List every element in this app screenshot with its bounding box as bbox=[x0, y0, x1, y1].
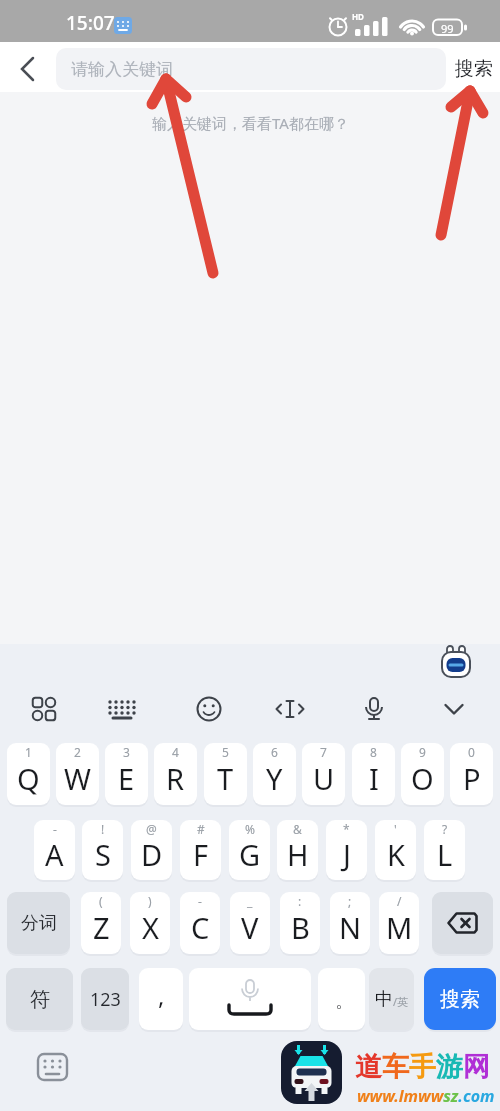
button[interactable]: # bbox=[180, 820, 221, 880]
button[interactable]: 0 bbox=[450, 743, 493, 805]
staticText: P bbox=[463, 759, 481, 798]
button[interactable]: / bbox=[379, 892, 419, 954]
button[interactable] bbox=[432, 892, 493, 954]
staticText: ; bbox=[348, 893, 352, 909]
button[interactable]: @ bbox=[131, 820, 172, 880]
staticText: # bbox=[197, 821, 205, 837]
staticText: * bbox=[343, 821, 350, 837]
staticText: www.lmwwsz.com bbox=[357, 1085, 495, 1107]
button[interactable]: 搜索 bbox=[448, 48, 500, 90]
button[interactable]: ( bbox=[81, 892, 121, 954]
staticText: 9 bbox=[419, 744, 426, 760]
staticText: 搜索 bbox=[455, 57, 493, 81]
staticText: 车 bbox=[382, 1050, 409, 1084]
staticText: D bbox=[141, 835, 163, 874]
staticText: 7 bbox=[320, 744, 327, 760]
staticText: ' bbox=[394, 821, 397, 837]
button[interactable]: - bbox=[180, 892, 220, 954]
button[interactable]: 分词 bbox=[7, 892, 70, 954]
staticText: 道 bbox=[355, 1050, 382, 1084]
staticText: B bbox=[291, 908, 310, 947]
staticText: J bbox=[343, 835, 351, 874]
staticText: A bbox=[45, 835, 64, 874]
staticText: 请输入关键词 bbox=[71, 59, 173, 80]
button[interactable]: 5 bbox=[204, 743, 247, 805]
staticText: - bbox=[53, 821, 57, 837]
button[interactable]: 8 bbox=[352, 743, 395, 805]
button[interactable]: : bbox=[280, 892, 320, 954]
staticText: C bbox=[191, 908, 210, 947]
staticText: 2 bbox=[74, 744, 81, 760]
staticText: G bbox=[239, 835, 261, 874]
staticText: 99 bbox=[441, 21, 454, 36]
staticText: 6 bbox=[271, 744, 278, 760]
staticText: _ bbox=[247, 893, 253, 909]
button[interactable]: 6 bbox=[253, 743, 296, 805]
button[interactable]: , bbox=[139, 968, 183, 1030]
staticText: 123 bbox=[90, 987, 121, 1012]
staticText: R bbox=[166, 759, 185, 798]
staticText: /英 bbox=[393, 994, 409, 1009]
button[interactable]: 中 bbox=[369, 968, 414, 1030]
button[interactable]: ' bbox=[375, 820, 416, 880]
button[interactable] bbox=[441, 645, 471, 678]
staticText: : bbox=[298, 893, 302, 909]
button[interactable]: 2 bbox=[56, 743, 99, 805]
button[interactable]: 搜索 bbox=[424, 968, 496, 1030]
staticText: X bbox=[142, 908, 159, 947]
staticText: / bbox=[397, 893, 402, 909]
button[interactable] bbox=[36, 1050, 70, 1084]
button[interactable] bbox=[189, 689, 229, 729]
button[interactable] bbox=[354, 689, 394, 729]
button[interactable]: 9 bbox=[401, 743, 444, 805]
staticText: Z bbox=[93, 908, 110, 947]
staticText: H bbox=[287, 835, 309, 874]
staticText: 中 bbox=[375, 988, 393, 1011]
button[interactable]: 4 bbox=[154, 743, 197, 805]
staticText: E bbox=[118, 759, 135, 798]
staticText: 分词 bbox=[21, 912, 57, 935]
button[interactable]: - bbox=[34, 820, 75, 880]
staticText: 8 bbox=[370, 744, 377, 760]
staticText: I bbox=[369, 759, 379, 798]
staticText: & bbox=[293, 821, 302, 837]
button[interactable] bbox=[8, 48, 52, 88]
staticText: 4 bbox=[172, 744, 179, 760]
button[interactable]: ? bbox=[424, 820, 465, 880]
staticText: 3 bbox=[123, 744, 130, 760]
button[interactable] bbox=[189, 968, 311, 1030]
staticText: T bbox=[217, 759, 234, 798]
button[interactable] bbox=[270, 689, 310, 729]
staticText: W bbox=[64, 759, 91, 798]
staticText: 15:07 bbox=[66, 10, 115, 36]
button[interactable]: % bbox=[229, 820, 270, 880]
button[interactable]: 3 bbox=[105, 743, 148, 805]
button[interactable]: 123 bbox=[81, 968, 129, 1030]
button[interactable] bbox=[24, 689, 64, 729]
button[interactable]: 请输入关键词 bbox=[56, 48, 446, 90]
button[interactable] bbox=[434, 689, 474, 729]
button[interactable] bbox=[102, 689, 142, 729]
button[interactable]: _ bbox=[230, 892, 270, 954]
button[interactable]: ! bbox=[82, 820, 123, 880]
staticText: M bbox=[386, 908, 413, 947]
button[interactable]: 。 bbox=[318, 968, 365, 1030]
staticText: O bbox=[411, 759, 434, 798]
staticText: N bbox=[339, 908, 362, 947]
staticText: 0 bbox=[468, 744, 475, 760]
staticText: ! bbox=[101, 821, 105, 837]
staticText: L bbox=[437, 835, 453, 874]
button[interactable]: 符 bbox=[6, 968, 73, 1030]
button[interactable]: * bbox=[326, 820, 367, 880]
staticText: % bbox=[245, 821, 255, 837]
button[interactable]: 7 bbox=[302, 743, 345, 805]
button[interactable]: ) bbox=[130, 892, 170, 954]
button[interactable]: & bbox=[277, 820, 318, 880]
button[interactable]: ; bbox=[330, 892, 370, 954]
staticText: 输入关键词，看看TA都在哪？ bbox=[152, 113, 349, 133]
button[interactable]: 1 bbox=[7, 743, 50, 805]
staticText: @ bbox=[146, 821, 157, 837]
staticText: ( bbox=[99, 893, 103, 909]
staticText: 手 bbox=[409, 1050, 436, 1084]
staticText: 。 bbox=[335, 990, 353, 1013]
